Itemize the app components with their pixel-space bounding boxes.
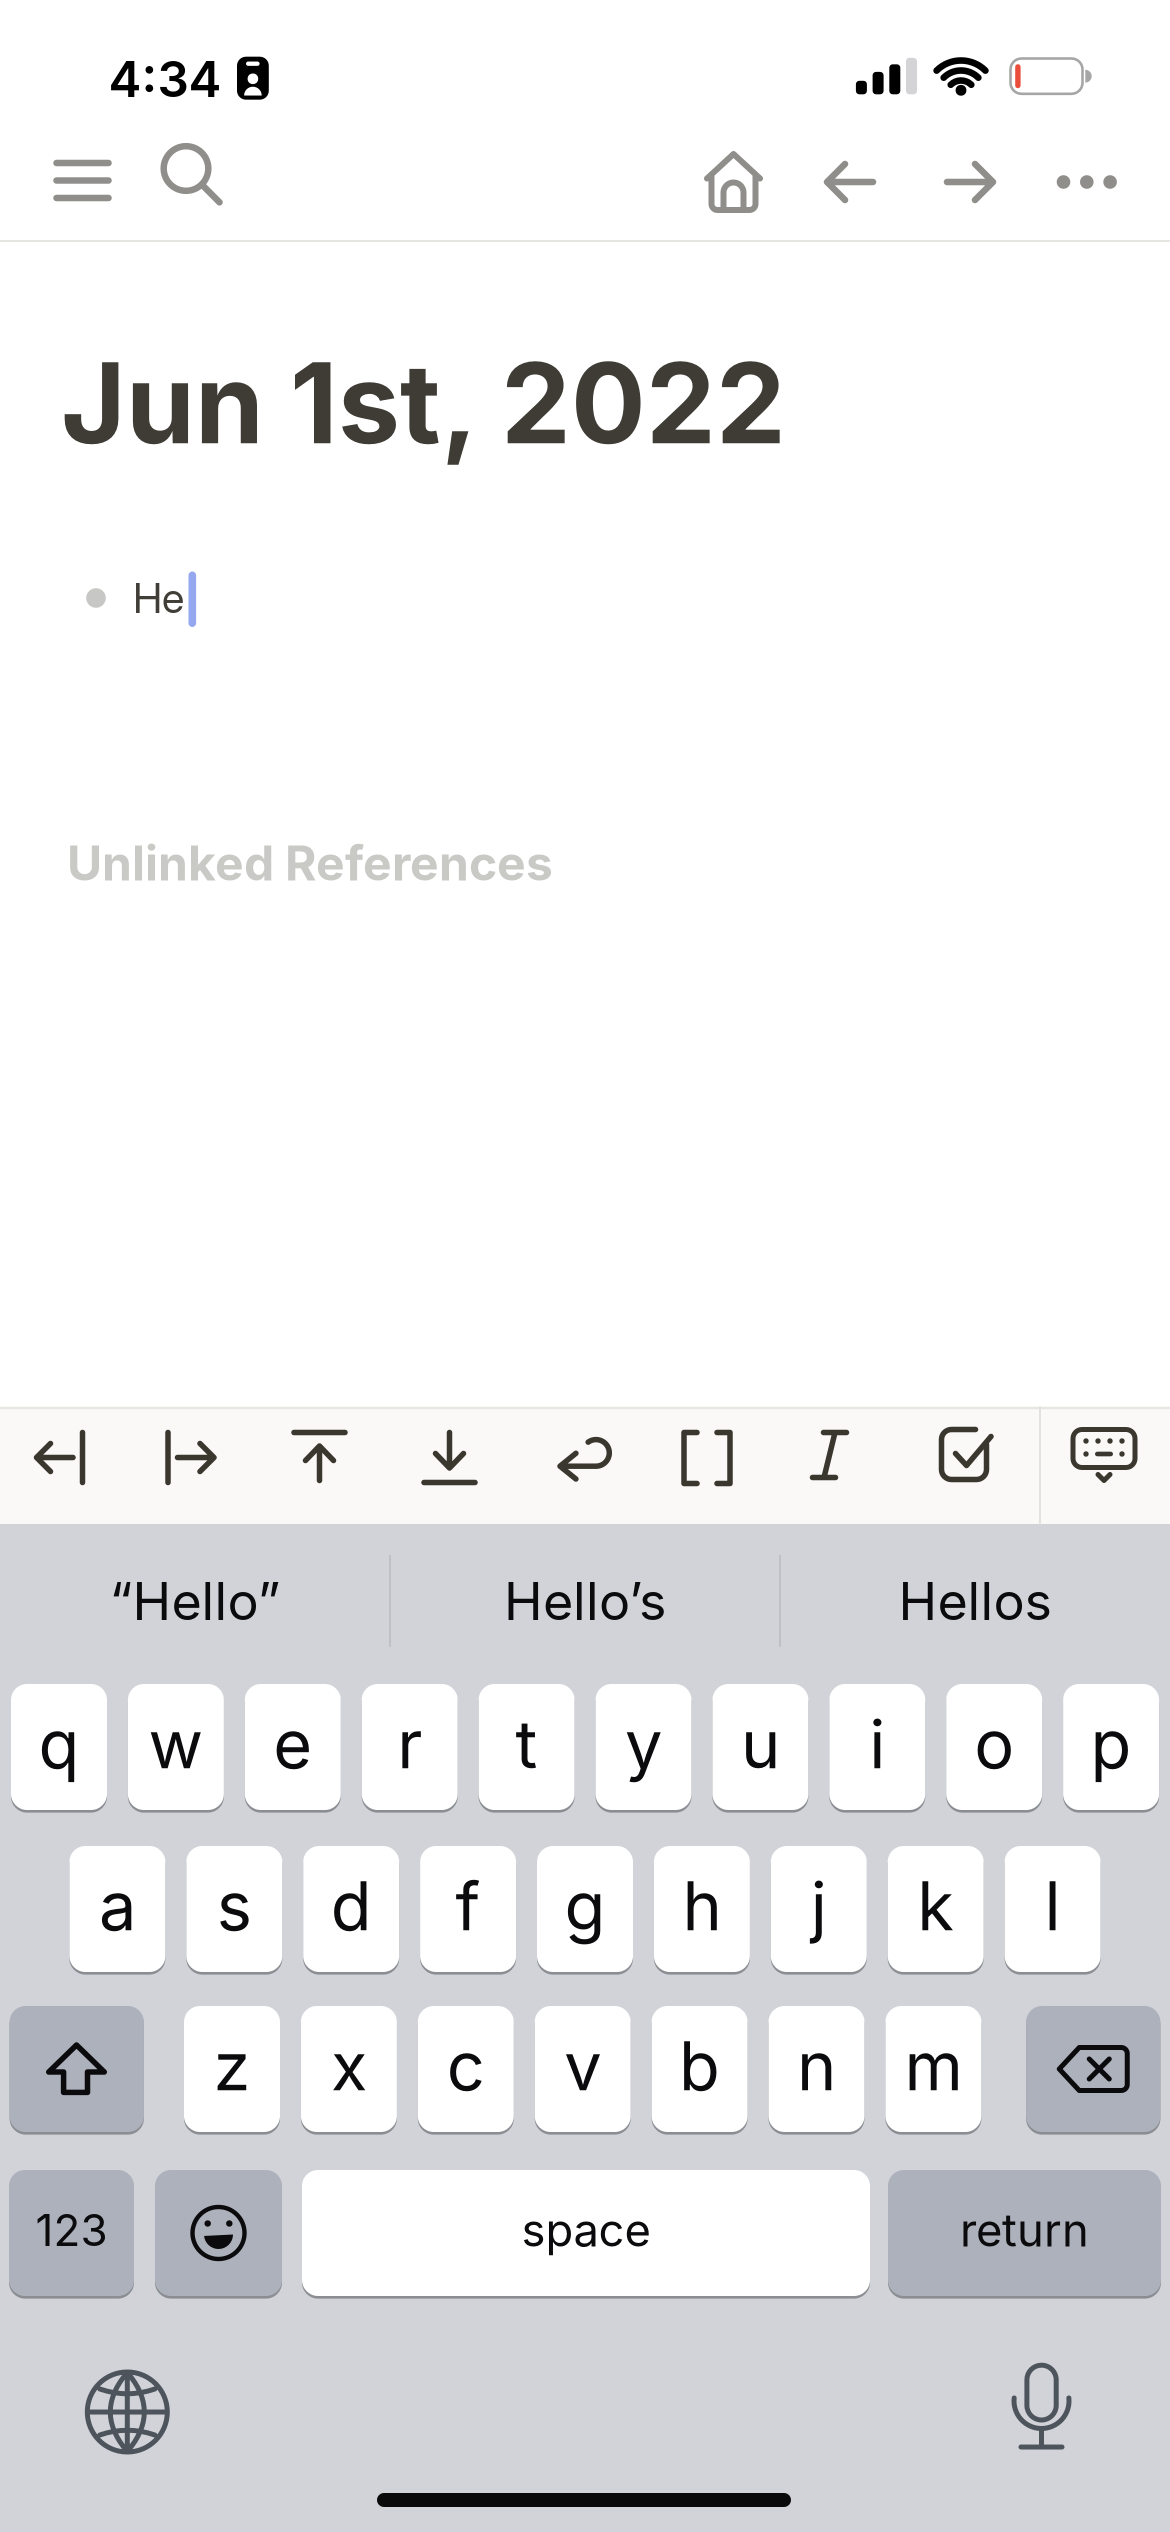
- button[interactable]: [682, 1429, 744, 1486]
- button[interactable]: h: [654, 1846, 750, 1972]
- button[interactable]: [52, 152, 112, 209]
- staticText: Hellos: [898, 1570, 1051, 1632]
- staticText: 123: [35, 2204, 107, 2256]
- button[interactable]: d: [303, 1846, 399, 1972]
- button[interactable]: a: [69, 1846, 165, 1972]
- button[interactable]: [812, 1429, 874, 1486]
- staticText: m: [904, 2027, 962, 2105]
- staticText: e: [273, 1705, 312, 1783]
- button[interactable]: s: [186, 1846, 282, 1972]
- staticText: u: [741, 1705, 780, 1783]
- button[interactable]: k: [888, 1846, 984, 1972]
- staticText: g: [564, 1867, 605, 1945]
- button[interactable]: y: [595, 1684, 691, 1810]
- button[interactable]: Hellos: [790, 1541, 1160, 1661]
- staticText: n: [797, 2027, 836, 2105]
- staticText: k: [917, 1867, 954, 1945]
- button[interactable]: o: [946, 1684, 1042, 1810]
- button[interactable]: [553, 1429, 615, 1486]
- staticText: r: [397, 1705, 422, 1783]
- staticText: j: [811, 1867, 827, 1945]
- staticText: Unlinked References: [67, 835, 553, 891]
- button[interactable]: Hello’s: [400, 1541, 770, 1661]
- button[interactable]: [704, 151, 763, 214]
- staticText: v: [564, 2027, 601, 2105]
- button[interactable]: g: [537, 1846, 633, 1972]
- staticText: o: [974, 1705, 1014, 1783]
- button[interactable]: m: [885, 2006, 981, 2132]
- staticText: d: [331, 1867, 372, 1945]
- staticText: Hello’s: [504, 1570, 666, 1632]
- button[interactable]: [35, 1429, 97, 1486]
- button[interactable]: n: [768, 2006, 864, 2132]
- staticText: t: [516, 1705, 538, 1783]
- button[interactable]: q: [11, 1684, 107, 1810]
- button[interactable]: c: [418, 2006, 514, 2132]
- button[interactable]: [825, 162, 875, 202]
- button[interactable]: [160, 143, 226, 209]
- button[interactable]: i: [829, 1684, 925, 1810]
- button[interactable]: 123: [9, 2170, 134, 2296]
- staticText: s: [217, 1867, 252, 1945]
- staticText: He: [133, 574, 184, 622]
- staticText: Jun 1st, 2022: [61, 338, 786, 468]
- button[interactable]: f: [420, 1846, 516, 1972]
- button[interactable]: [945, 162, 995, 202]
- button[interactable]: return: [888, 2170, 1161, 2296]
- staticText: l: [1045, 1867, 1061, 1945]
- staticText: 4:34: [108, 50, 221, 108]
- staticText: h: [682, 1867, 721, 1945]
- staticText: b: [679, 2027, 720, 2105]
- button[interactable]: p: [1063, 1684, 1159, 1810]
- button[interactable]: z: [184, 2006, 280, 2132]
- button[interactable]: [155, 2170, 282, 2296]
- staticText: i: [869, 1705, 885, 1783]
- staticText: q: [38, 1705, 79, 1783]
- staticText: space: [521, 2203, 650, 2257]
- button[interactable]: [1073, 1429, 1135, 1486]
- button[interactable]: [941, 1429, 1003, 1486]
- button[interactable]: “Hello”: [10, 1541, 380, 1661]
- button[interactable]: space: [302, 2170, 870, 2296]
- button[interactable]: e: [245, 1684, 341, 1810]
- staticText: c: [447, 2027, 485, 2105]
- button[interactable]: [85, 2370, 169, 2454]
- staticText: return: [960, 2203, 1089, 2257]
- staticText: “Hello”: [109, 1570, 280, 1632]
- button[interactable]: v: [535, 2006, 631, 2132]
- button[interactable]: [423, 1429, 485, 1486]
- staticText: w: [148, 1705, 203, 1783]
- button[interactable]: [1056, 175, 1117, 189]
- button[interactable]: x: [301, 2006, 397, 2132]
- button[interactable]: l: [1005, 1846, 1101, 1972]
- button[interactable]: [1026, 2006, 1160, 2132]
- button[interactable]: w: [128, 1684, 224, 1810]
- button[interactable]: r: [362, 1684, 458, 1810]
- button[interactable]: [293, 1429, 355, 1486]
- button[interactable]: j: [771, 1846, 867, 1972]
- button[interactable]: [10, 2006, 144, 2132]
- button[interactable]: [1011, 2361, 1071, 2453]
- staticText: f: [456, 1867, 481, 1945]
- button[interactable]: u: [712, 1684, 808, 1810]
- staticText: z: [213, 2027, 250, 2105]
- button[interactable]: [164, 1429, 226, 1486]
- staticText: p: [1091, 1705, 1132, 1783]
- staticText: y: [625, 1705, 662, 1783]
- button[interactable]: t: [479, 1684, 575, 1810]
- button[interactable]: b: [652, 2006, 748, 2132]
- staticText: x: [331, 2027, 367, 2105]
- staticText: a: [99, 1867, 136, 1945]
